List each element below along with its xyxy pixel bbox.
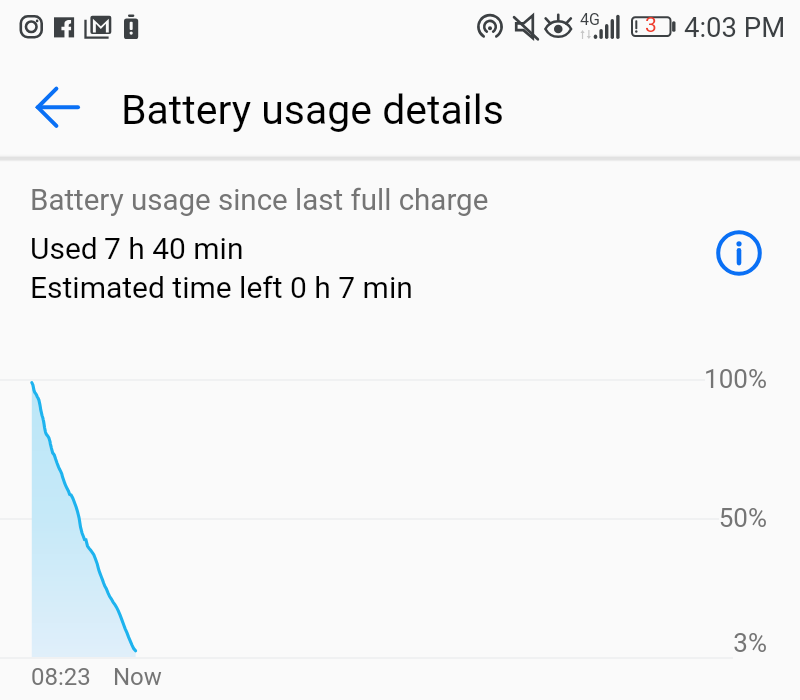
- staticText: 4:03 PM: [684, 11, 786, 43]
- staticText: 3%: [600, 628, 767, 658]
- staticText: 4G: [580, 10, 600, 29]
- staticText: Used 7 h 40 min: [30, 231, 244, 266]
- button[interactable]: Information: [714, 228, 764, 278]
- staticText: 100%: [600, 364, 767, 394]
- staticText: 08:23: [31, 663, 91, 691]
- staticText: Battery usage since last full charge: [30, 183, 489, 218]
- staticText: 50%: [600, 503, 767, 533]
- button[interactable]: Back: [7, 60, 107, 154]
- staticText: Battery usage details: [121, 86, 504, 134]
- staticText: 3: [645, 13, 657, 38]
- staticText: Estimated time left 0 h 7 min: [30, 270, 413, 305]
- staticText: Now: [113, 663, 162, 691]
